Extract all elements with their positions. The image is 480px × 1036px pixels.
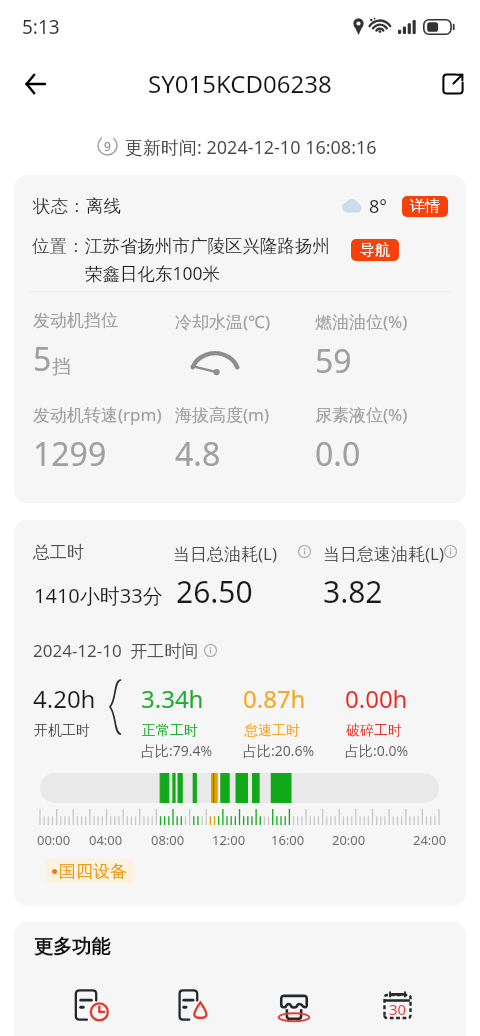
button[interactable]: 详情 (402, 196, 448, 217)
staticText: 0.87h (243, 682, 306, 715)
staticText: 状态： (33, 195, 86, 217)
staticText: SY015KCD06238 (148, 67, 332, 100)
button[interactable]: 工时报表 (56, 974, 128, 1036)
staticText: 24:00 (413, 831, 447, 849)
staticText: 详情 (410, 197, 440, 216)
staticText: 20:00 (332, 831, 366, 849)
button[interactable]: 油耗报表 (158, 974, 230, 1036)
staticText: 0.00h (345, 682, 408, 715)
staticText: 江苏省扬州市广陵区兴隆路扬州 (85, 235, 330, 257)
staticText: 开机工时 (34, 722, 90, 740)
staticText: 冷却水温(℃) (175, 310, 271, 333)
staticText: 4.20h (33, 682, 96, 715)
staticText: 16:00 (271, 831, 305, 849)
staticText: 占比:0.0% (345, 741, 409, 760)
staticText: 59 (315, 339, 352, 383)
staticText: 1299 (33, 432, 107, 476)
staticText: 5 (33, 337, 52, 381)
staticText: 正常工时 (142, 722, 198, 740)
staticText: 发动机转速(rpm) (33, 403, 162, 426)
staticText: 更新时间: 2024-12-10 16:08:16 (125, 135, 377, 160)
staticText: 挡 (52, 355, 71, 379)
staticText: 3.34h (141, 682, 204, 715)
staticText: 怠速工时 (244, 722, 300, 740)
staticText: 尿素液位(%) (315, 403, 408, 426)
staticText: 发动机挡位 (33, 310, 118, 331)
staticText: 离线 (86, 195, 121, 217)
button[interactable]: 月报 (361, 974, 433, 1036)
staticText: 26.50 (176, 571, 253, 612)
staticText: 位置： (32, 235, 85, 257)
staticText: 破碎工时 (346, 722, 402, 740)
staticText: 占比:20.6% (243, 741, 315, 760)
staticText: 国四设备 (59, 861, 127, 882)
staticText: 1410小时33分 (34, 582, 163, 609)
staticText: 3.82 (323, 571, 383, 612)
staticText: 燃油油位(%) (315, 310, 408, 333)
button[interactable]: 导航 (351, 239, 399, 261)
staticText: 2024-12-10 开工时间 (33, 639, 199, 662)
staticText: 荣鑫日化东100米 (85, 261, 221, 285)
staticText: 04:00 (89, 831, 123, 849)
staticText: 当日怠速油耗(L) (323, 542, 445, 565)
staticText: 08:00 (151, 831, 185, 849)
staticText: 12:00 (212, 831, 246, 849)
button[interactable]: 设备画像 (258, 974, 330, 1036)
staticText: 9 (104, 138, 111, 154)
staticText: 总工时 (33, 542, 84, 563)
button[interactable]: Back (13, 62, 57, 106)
staticText: 占比:79.4% (141, 741, 213, 760)
staticText: 00:00 (37, 831, 71, 849)
staticText: 5:13 (22, 14, 60, 40)
staticText: 海拔高度(m) (175, 403, 270, 426)
button[interactable]: Share (431, 62, 475, 106)
staticText: 4.8 (175, 432, 221, 476)
staticText: 当日总油耗(L) (173, 542, 278, 565)
staticText: 30 (389, 999, 407, 1019)
staticText: 8° (369, 194, 387, 219)
staticText: 0.0 (315, 432, 361, 476)
staticText: 更多功能 (34, 935, 110, 959)
staticText: 导航 (360, 241, 390, 260)
